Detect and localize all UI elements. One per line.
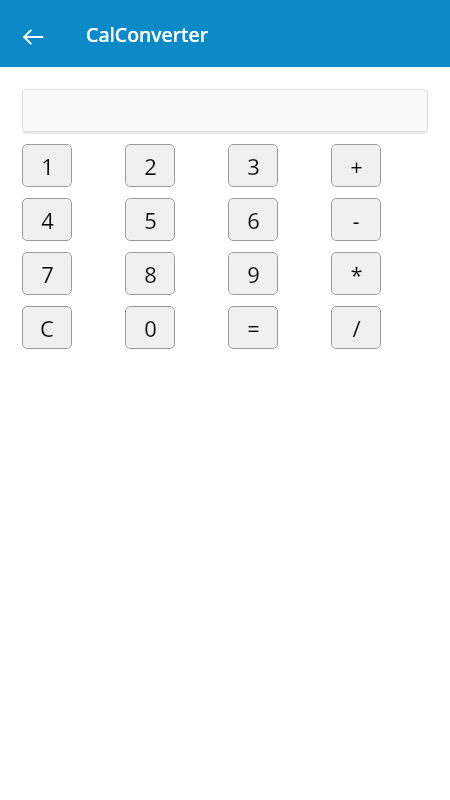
button[interactable]: +: [331, 144, 381, 187]
staticText: -: [352, 205, 360, 235]
button[interactable]: -: [331, 198, 381, 241]
staticText: 3: [247, 151, 260, 181]
button[interactable]: /: [331, 306, 381, 349]
staticText: *: [350, 259, 363, 289]
staticText: 2: [144, 151, 157, 181]
staticText: CalConverter: [86, 21, 208, 48]
button[interactable]: Navigate up: [12, 16, 54, 58]
staticText: +: [350, 151, 363, 181]
staticText: /: [352, 313, 361, 343]
staticText: 6: [247, 205, 260, 235]
button[interactable]: 5: [125, 198, 175, 241]
staticText: 5: [144, 205, 157, 235]
staticText: 0: [144, 313, 157, 343]
button[interactable]: 4: [22, 198, 72, 241]
button[interactable]: 7: [22, 252, 72, 295]
staticText: =: [247, 313, 260, 343]
button[interactable]: =: [228, 306, 278, 349]
staticText: 9: [247, 259, 260, 289]
button[interactable]: [22, 89, 428, 132]
button[interactable]: 0: [125, 306, 175, 349]
staticText: 4: [41, 205, 54, 235]
button[interactable]: 3: [228, 144, 278, 187]
staticText: 8: [144, 259, 157, 289]
button[interactable]: C: [22, 306, 72, 349]
button[interactable]: 8: [125, 252, 175, 295]
button[interactable]: 1: [22, 144, 72, 187]
staticText: 7: [41, 259, 54, 289]
staticText: C: [40, 313, 54, 343]
button[interactable]: *: [331, 252, 381, 295]
button[interactable]: 2: [125, 144, 175, 187]
staticText: 1: [41, 151, 54, 181]
button[interactable]: 6: [228, 198, 278, 241]
button[interactable]: 9: [228, 252, 278, 295]
